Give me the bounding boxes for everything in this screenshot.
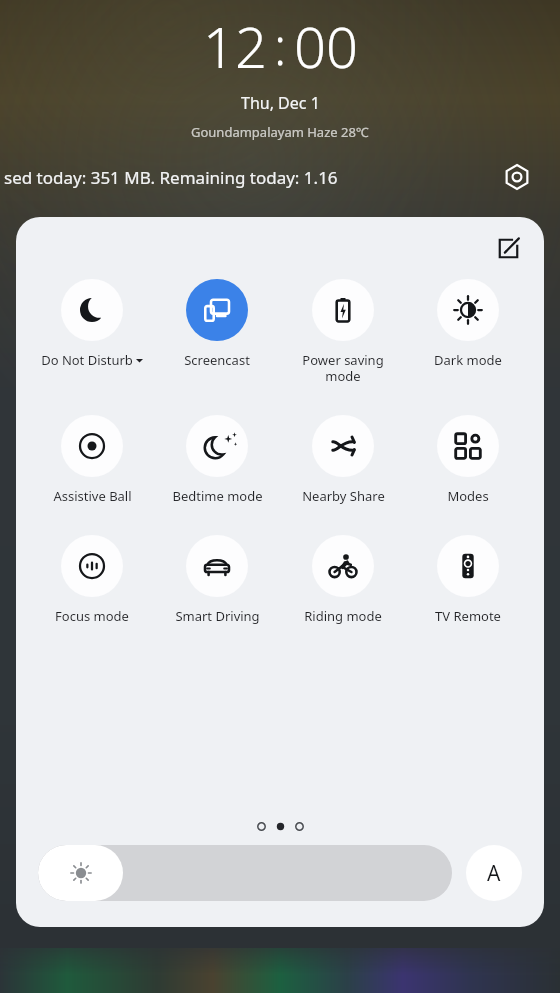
staticText: Thu, Dec 1 bbox=[241, 92, 320, 114]
staticText: 12 bbox=[203, 8, 267, 84]
button[interactable]: Do Not Disturb bbox=[36, 279, 148, 369]
staticText: A bbox=[487, 859, 501, 888]
staticText: Goundampalayam Haze 28℃ bbox=[191, 123, 369, 141]
button[interactable]: Focus mode bbox=[36, 535, 148, 625]
staticText: Riding mode bbox=[304, 607, 382, 625]
button[interactable]: Riding mode bbox=[287, 535, 399, 625]
button[interactable]: Settings bbox=[500, 160, 534, 194]
button[interactable]: Auto brightness bbox=[466, 845, 522, 901]
button[interactable]: Modes bbox=[412, 415, 524, 505]
staticText: Modes bbox=[447, 487, 489, 505]
staticText: Smart Driving bbox=[175, 607, 260, 625]
button[interactable]: TV Remote bbox=[412, 535, 524, 625]
staticText: Screencast bbox=[184, 351, 250, 369]
button[interactable]: Dark mode bbox=[412, 279, 524, 369]
staticText: Assistive Ball bbox=[53, 487, 132, 505]
staticText: Focus mode bbox=[55, 607, 129, 625]
staticText: Do Not Disturb bbox=[41, 351, 133, 369]
button[interactable]: Smart Driving bbox=[161, 535, 273, 625]
button[interactable]: Edit quick settings bbox=[488, 228, 528, 268]
staticText: sed today: 351 MB. Remaining today: 1.16 bbox=[4, 166, 338, 189]
staticText: Bedtime mode bbox=[172, 487, 263, 505]
staticText: : bbox=[274, 12, 287, 80]
staticText: 00 bbox=[294, 8, 358, 84]
button[interactable]: Brightness bbox=[38, 845, 452, 901]
staticText: Power saving mode bbox=[302, 351, 384, 385]
button[interactable]: Bedtime mode bbox=[161, 415, 273, 505]
staticText: Nearby Share bbox=[302, 487, 385, 505]
button[interactable]: Power saving mode bbox=[287, 279, 399, 385]
button[interactable]: Screencast bbox=[161, 279, 273, 369]
button[interactable]: Assistive Ball bbox=[36, 415, 148, 505]
staticText: TV Remote bbox=[435, 607, 501, 625]
button[interactable]: sed today: 351 MB. Remaining today: 1.16 bbox=[4, 166, 338, 189]
staticText: Dark mode bbox=[434, 351, 502, 369]
button[interactable]: Nearby Share bbox=[287, 415, 399, 505]
